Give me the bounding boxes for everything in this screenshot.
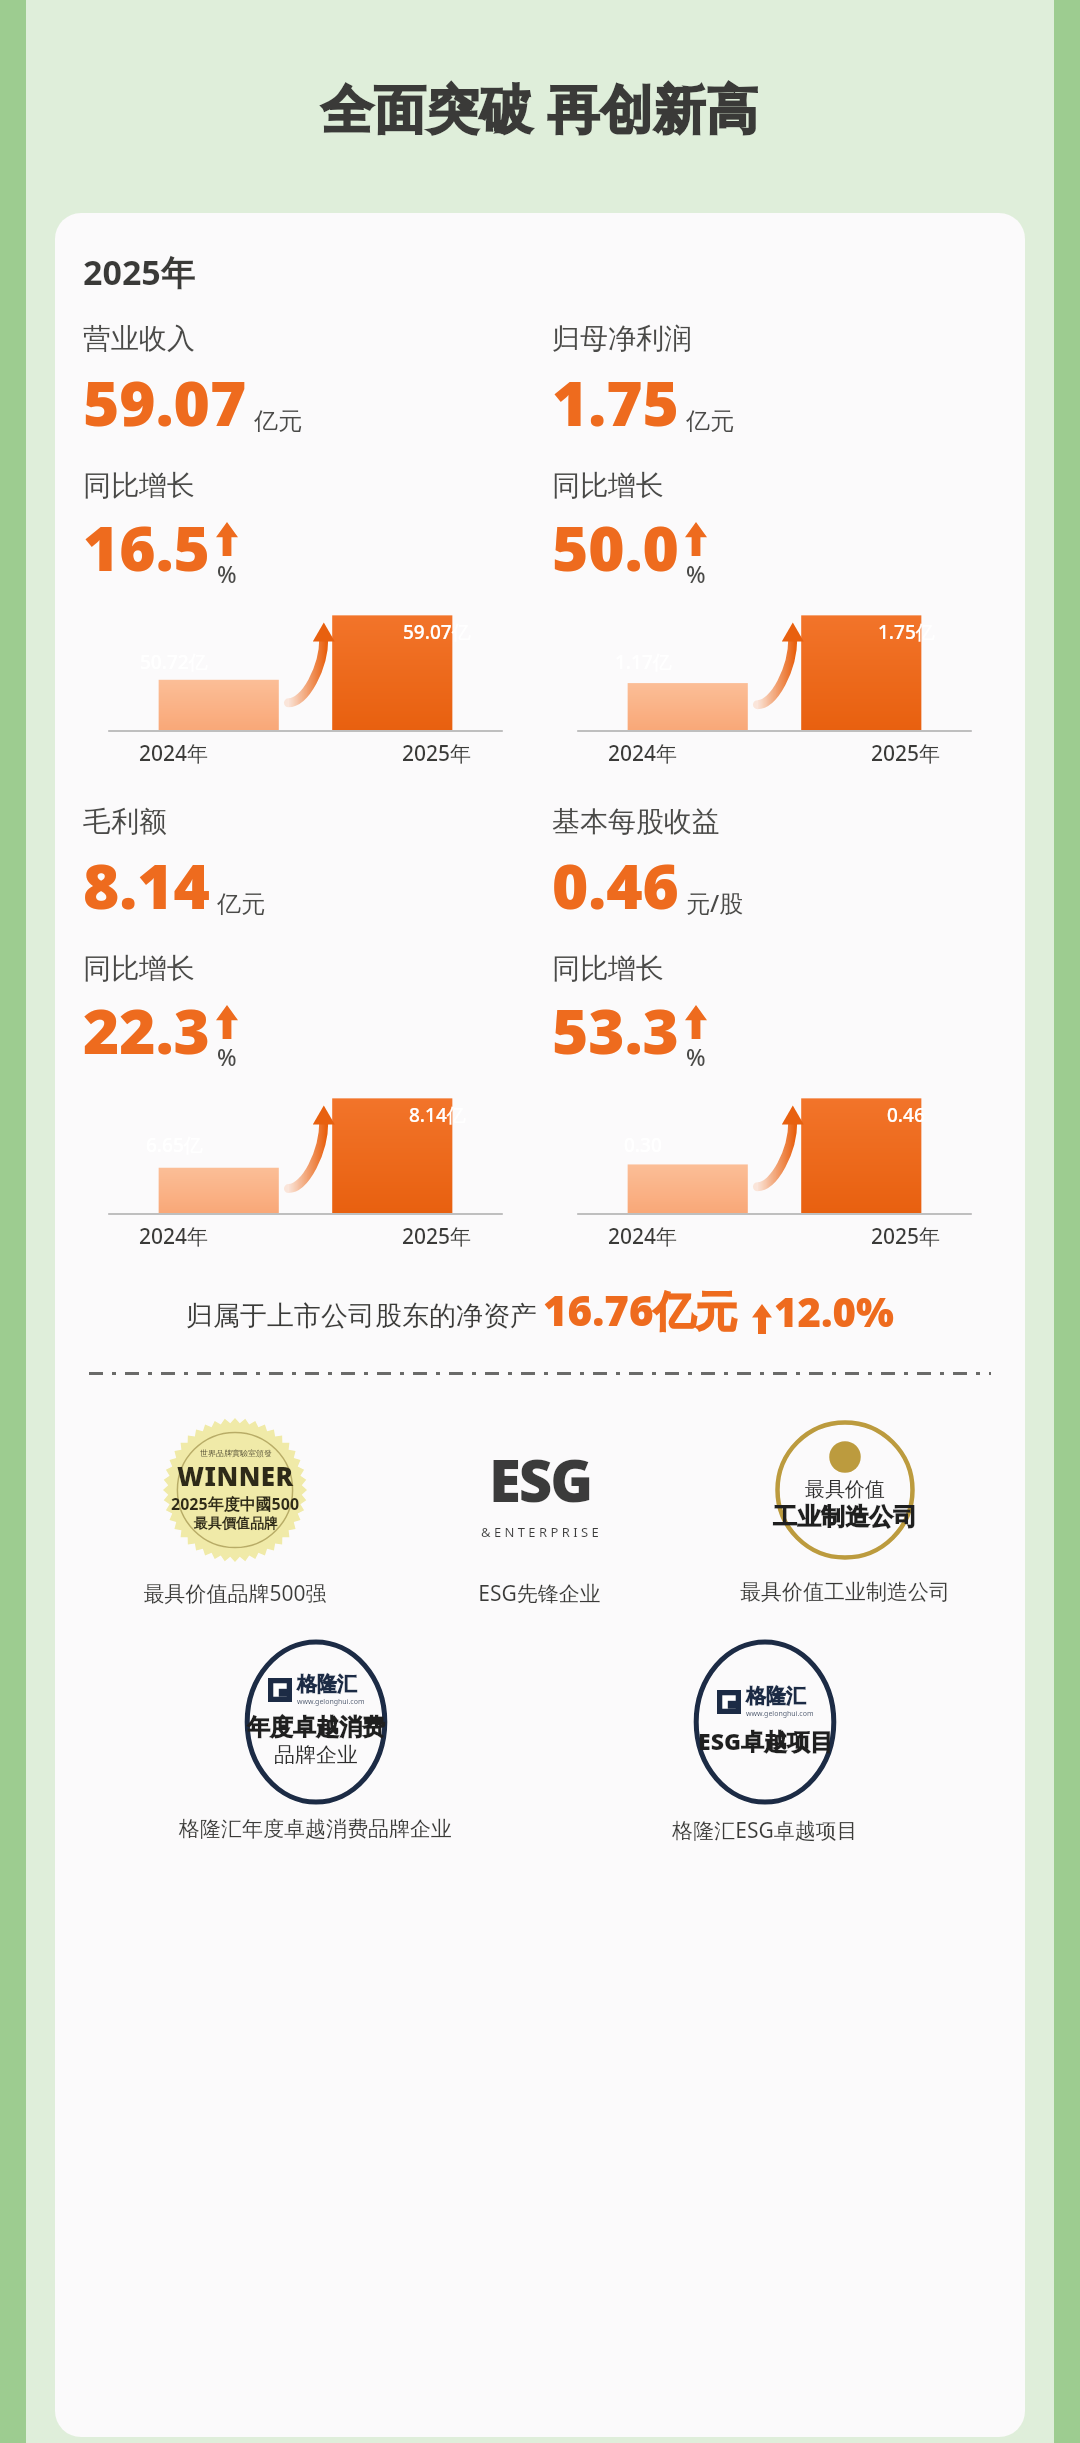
staticText: ESG先锋企业 [478,1579,601,1608]
staticText: 最具價值品牌 [194,1515,278,1533]
staticText: 同比增长 [83,468,195,503]
staticText: 年度卓越消费 [247,1713,385,1742]
staticText: 品牌企业 [274,1742,358,1768]
staticText: 格隆汇 [746,1684,806,1709]
staticText: 2025年 [83,249,195,295]
staticText: % [686,558,706,589]
staticText: % [686,1041,706,1072]
staticText: 2025年 [402,1222,472,1251]
staticText: 亿元 [217,889,265,919]
staticText: 同比增长 [83,951,195,986]
staticText: 格隆汇 [297,1672,357,1697]
other: 格隆汇 奖章 [685,1642,845,1802]
staticText: 同比增长 [552,468,664,503]
staticText: www.gelonghui.com [297,1697,365,1707]
staticText: 0.46 [887,1102,925,1128]
button[interactable]: 最具价值品牌500强 奖章 [83,1415,387,1608]
staticText: 2024年 [139,739,209,768]
button[interactable]: 归母净利润 [552,321,997,768]
staticText: 归属于上市公司股东的净资产 [186,1299,537,1333]
staticText: 8.14 [83,843,210,927]
staticText: 毛利额 [83,804,167,839]
staticText: 0.46 [552,843,679,927]
other: 最具价值工业制造公司 奖章 [770,1415,920,1565]
staticText: 2025年度中國500 [171,1493,300,1515]
staticText: 归母净利润 [552,321,692,356]
staticText: 最具价值工业制造公司 [740,1579,950,1605]
staticText: ESG [489,1440,592,1519]
other: 格隆汇 奖章 [236,1642,396,1802]
staticText: 最具价值品牌500强 [143,1579,327,1608]
staticText: 22.3 [83,988,210,1072]
staticText: 2024年 [139,1222,209,1251]
other: ESG先锋企业 标志 [465,1415,615,1565]
staticText: 最具价值 [805,1477,885,1502]
button[interactable]: 格隆汇 奖章 [103,1642,528,1842]
staticText: 2025年 [871,739,941,768]
staticText: 8.14亿 [409,1102,466,1128]
staticText: 基本每股收益 [552,804,720,839]
staticText: 世界品牌實驗室頒發 [200,1448,272,1458]
staticText: 亿元 [686,406,734,436]
staticText: % [217,1041,237,1072]
staticText: 1.75亿 [878,619,935,645]
staticText: 全面突破 再创新高 [26,72,1054,143]
button[interactable]: ESG先锋企业 标志 [387,1415,692,1608]
staticText: 16.76亿元 [543,1281,738,1338]
staticText: & E N T E R P R I S E [481,1523,599,1541]
staticText: 格隆汇年度卓越消费品牌企业 [179,1816,452,1842]
staticText: 营业收入 [83,321,195,356]
other: 最具价值品牌500强 奖章 [160,1415,310,1565]
staticText: www.gelonghui.com [746,1709,814,1719]
staticText: 2025年 [871,1222,941,1251]
staticText: 16.5 [83,505,210,589]
staticText: WINNER [177,1458,294,1493]
staticText: 工业制造公司 [773,1502,917,1532]
staticText: 同比增长 [552,951,664,986]
staticText: 1.75 [552,360,679,444]
staticText: 59.07 [83,360,247,444]
button[interactable]: 营业收入 [83,321,528,768]
staticText: 2024年 [608,1222,678,1251]
staticText: 12.0% [774,1284,894,1338]
staticText: 2025年 [402,739,472,768]
button[interactable]: 基本每股收益 [552,804,997,1251]
staticText: 亿元 [254,406,302,436]
staticText: 2024年 [608,739,678,768]
staticText: 格隆汇ESG卓越项目 [672,1816,858,1845]
staticText: 元/股 [686,886,744,919]
staticText: ESG卓越项目 [698,1725,833,1756]
staticText: % [217,558,237,589]
button[interactable]: 格隆汇 奖章 [552,1642,977,1845]
staticText: 50.0 [552,505,679,589]
button[interactable]: 毛利额 [83,804,528,1251]
staticText: 59.07亿 [403,619,471,645]
staticText: 53.3 [552,988,679,1072]
button[interactable]: 最具价值工业制造公司 奖章 [692,1415,997,1605]
